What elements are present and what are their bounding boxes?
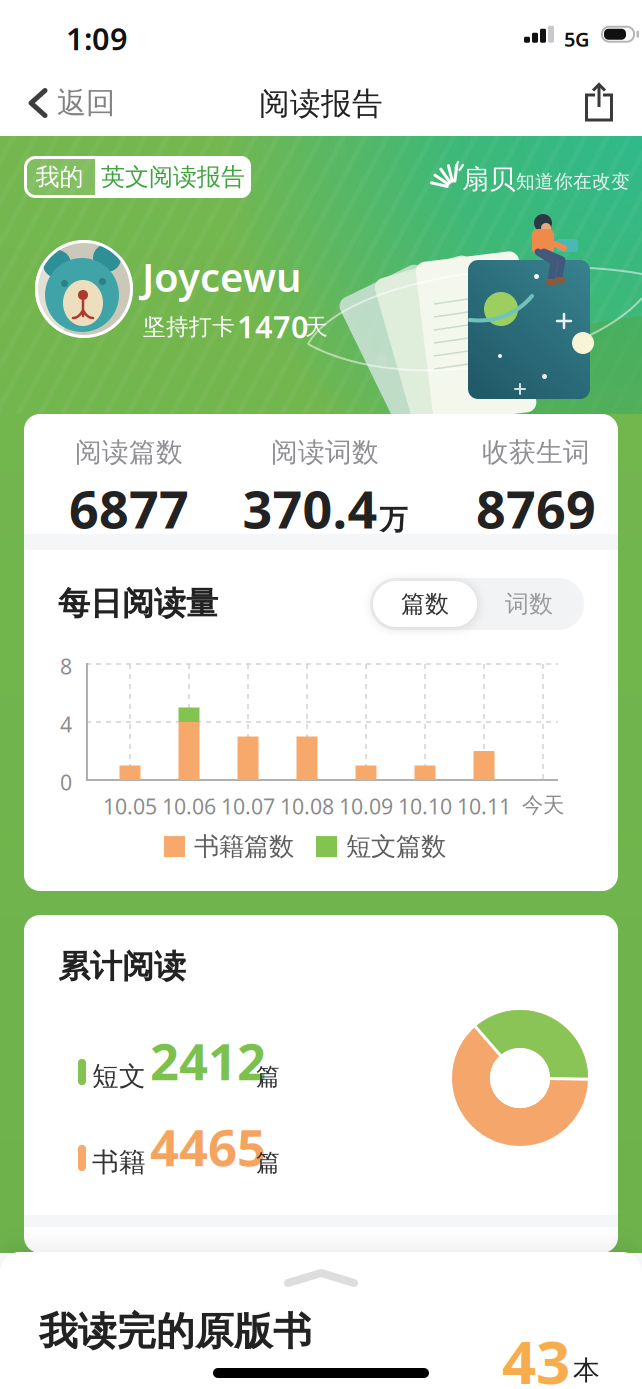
staticText: Joycewu: [142, 250, 302, 303]
staticText: 5G: [564, 26, 590, 52]
staticText: 10.11: [457, 792, 511, 820]
staticText: 短文篇数: [346, 831, 446, 862]
staticText: 6877: [69, 474, 189, 543]
button[interactable]: 返回: [28, 85, 115, 121]
staticText: 阅读报告: [259, 85, 383, 123]
staticText: 4465: [150, 1113, 266, 1180]
staticText: 累计阅读: [58, 947, 186, 986]
staticText: 万: [379, 502, 407, 537]
staticText: 10.05: [103, 792, 157, 820]
staticText: 本: [573, 1354, 600, 1387]
staticText: 2412: [150, 1027, 266, 1094]
staticText: 10.10: [398, 792, 452, 820]
staticText: 10.09: [339, 792, 393, 820]
staticText: 4: [60, 710, 72, 738]
staticText: 1470: [237, 306, 309, 347]
staticText: 书籍: [92, 1146, 146, 1179]
staticText: 阅读词数: [271, 436, 379, 469]
staticText: 每日阅读量: [58, 584, 218, 623]
button[interactable]: 词数: [477, 581, 581, 627]
staticText: 我的: [35, 162, 83, 192]
staticText: 今天: [522, 792, 564, 818]
staticText: 英文阅读报告: [101, 162, 245, 192]
staticText: 返回: [57, 85, 115, 121]
staticText: 0: [60, 768, 72, 796]
staticText: 天: [305, 313, 328, 341]
staticText: 知道你在改变: [516, 170, 630, 193]
staticText: 词数: [505, 589, 553, 619]
staticText: 10.06: [162, 792, 216, 820]
staticText: 43: [502, 1321, 570, 1389]
staticText: 我读完的原版书: [39, 1308, 312, 1355]
staticText: 篇数: [401, 589, 449, 619]
staticText: 1:09: [66, 18, 128, 59]
staticText: 8: [60, 652, 72, 680]
staticText: 篇: [256, 1148, 280, 1177]
staticText: 短文: [92, 1060, 146, 1093]
staticText: 坚持打卡: [143, 313, 235, 341]
button[interactable]: 分享: [585, 83, 613, 122]
staticText: 收获生词: [482, 436, 590, 469]
staticText: 370.4: [242, 474, 377, 543]
staticText: 8769: [476, 474, 596, 543]
button[interactable]: 篇数: [373, 581, 477, 627]
staticText: 阅读篇数: [75, 436, 183, 469]
button[interactable]: 展开: [288, 1273, 354, 1285]
staticText: 篇: [256, 1062, 280, 1091]
staticText: 10.07: [221, 792, 275, 820]
staticText: 书籍篇数: [194, 831, 294, 862]
staticText: 10.08: [280, 792, 334, 820]
staticText: 扇贝: [462, 163, 516, 196]
